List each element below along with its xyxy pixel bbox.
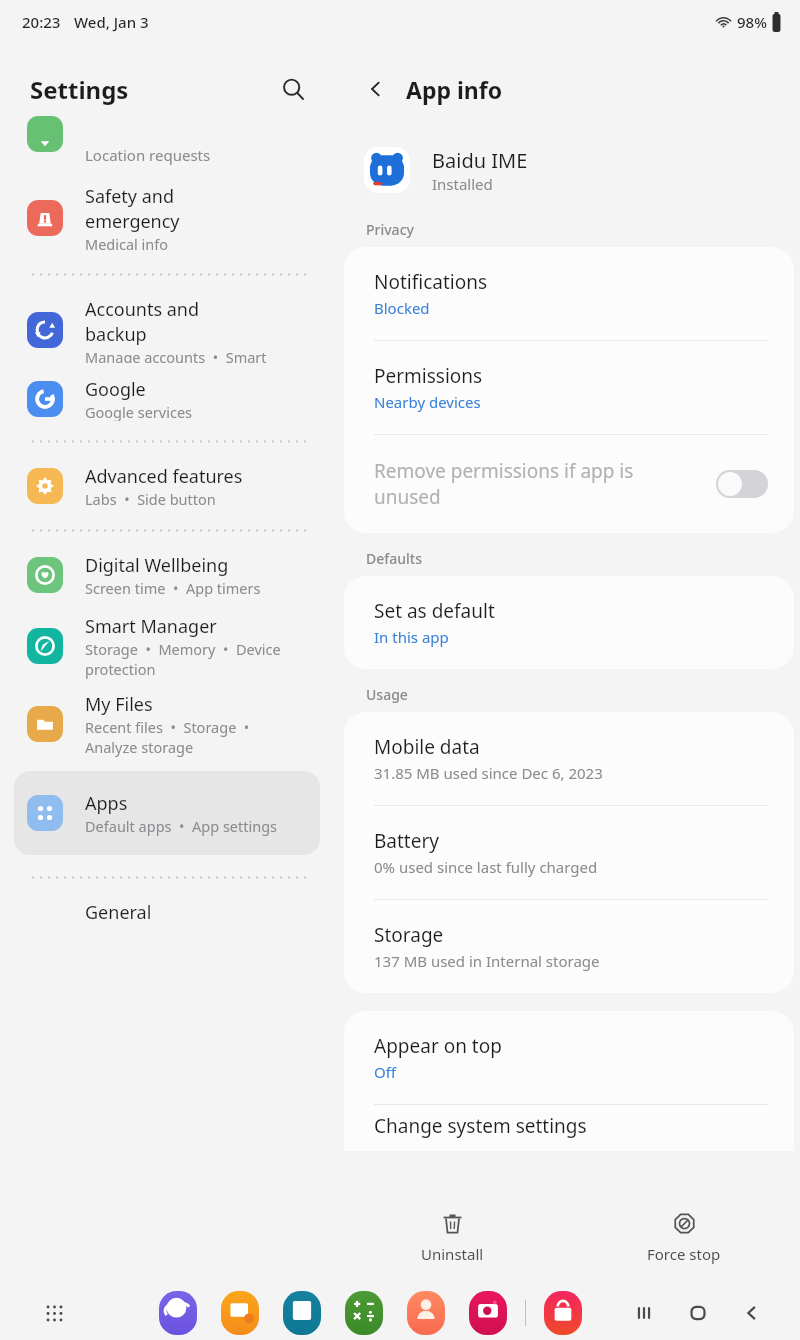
staticText: Settings xyxy=(30,73,129,106)
button[interactable]: Notifications xyxy=(344,247,794,340)
button[interactable]: Recents xyxy=(626,1295,662,1331)
button[interactable]: App xyxy=(283,1291,321,1335)
staticText: Blocked xyxy=(374,298,430,318)
staticText: unused xyxy=(374,484,441,510)
button[interactable]: Set as default xyxy=(344,576,794,669)
button[interactable]: Back xyxy=(354,67,398,111)
staticText: Permissions xyxy=(374,363,483,389)
button[interactable]: Change system settings xyxy=(344,1105,794,1151)
staticText: Storage • Memory • Device xyxy=(85,639,281,659)
staticText: Safety and xyxy=(85,184,174,209)
button[interactable]: Appear on top xyxy=(344,1011,794,1104)
button[interactable]: App xyxy=(544,1291,582,1335)
button[interactable]: Force stop xyxy=(568,1189,800,1285)
button[interactable]: Back xyxy=(734,1295,770,1331)
button[interactable]: All apps xyxy=(36,1295,72,1331)
staticText: Medical info xyxy=(85,234,169,252)
button[interactable]: App xyxy=(221,1291,259,1335)
staticText: emergency xyxy=(85,209,180,234)
staticText: 20:23 xyxy=(22,12,61,32)
button[interactable]: Safety and xyxy=(0,184,336,252)
staticText: Notifications xyxy=(374,269,488,295)
staticText: Advanced features xyxy=(85,464,243,489)
staticText: 98% xyxy=(737,12,767,32)
staticText: Set as default xyxy=(374,598,495,624)
staticText: Usage xyxy=(366,685,408,704)
staticText: App info xyxy=(406,74,503,105)
button[interactable]: Advanced features xyxy=(0,464,336,508)
button[interactable]: Apps xyxy=(14,771,320,855)
button[interactable]: My Files xyxy=(0,691,336,757)
staticText: Default apps • App settings xyxy=(85,816,278,836)
staticText: Privacy xyxy=(366,220,414,239)
staticText: 31.85 MB used since Dec 6, 2023 xyxy=(374,763,603,783)
staticText: Battery xyxy=(374,828,439,854)
staticText: Manage accounts • Smart xyxy=(85,347,267,363)
staticText: Location requests xyxy=(85,145,211,165)
button[interactable]: Uninstall xyxy=(336,1189,568,1285)
button[interactable]: Baidu IME xyxy=(336,134,800,206)
staticText: Google xyxy=(85,377,146,402)
button[interactable]: App xyxy=(407,1291,445,1335)
staticText: General xyxy=(85,900,152,925)
staticText: Smart Manager xyxy=(85,614,217,639)
button[interactable]: App xyxy=(345,1291,383,1335)
staticText: Uninstall xyxy=(421,1244,484,1264)
staticText: Google services xyxy=(85,402,193,421)
staticText: Analyze storage xyxy=(85,737,194,757)
staticText: Wed, Jan 3 xyxy=(74,12,149,32)
staticText: Off xyxy=(374,1062,397,1082)
staticText: Screen time • App timers xyxy=(85,578,261,597)
staticText: Installed xyxy=(432,174,493,194)
button[interactable]: Search xyxy=(271,67,315,111)
staticText: protection xyxy=(85,659,156,679)
staticText: Force stop xyxy=(647,1244,721,1264)
staticText: Mobile data xyxy=(374,734,480,760)
button[interactable]: Google xyxy=(0,377,336,421)
staticText: Labs • Side button xyxy=(85,489,216,508)
button[interactable]: Smart Manager xyxy=(0,613,336,679)
staticText: Defaults xyxy=(366,549,422,568)
staticText: Nearby devices xyxy=(374,392,481,412)
staticText: 137 MB used in Internal storage xyxy=(374,951,600,971)
staticText: Recent files • Storage • xyxy=(85,717,250,737)
staticText: Accounts and xyxy=(85,297,200,322)
button[interactable]: Permissions xyxy=(344,341,794,434)
button[interactable]: Battery xyxy=(344,806,794,899)
staticText: backup xyxy=(85,322,147,347)
button[interactable]: App xyxy=(159,1291,197,1335)
staticText: Apps xyxy=(85,791,128,816)
button[interactable]: Remove permissions toggle xyxy=(716,470,768,498)
staticText: My Files xyxy=(85,692,153,717)
staticText: Digital Wellbeing xyxy=(85,553,229,578)
button[interactable]: Storage xyxy=(344,900,794,993)
button[interactable]: App xyxy=(469,1291,507,1335)
button[interactable]: Digital Wellbeing xyxy=(0,553,336,597)
button[interactable]: Remove permissions if app is xyxy=(344,435,794,533)
button[interactable]: Accounts and xyxy=(0,297,336,363)
staticText: 0% used since last fully charged xyxy=(374,857,598,877)
button[interactable]: Mobile data xyxy=(344,712,794,805)
staticText: In this app xyxy=(374,627,449,647)
staticText: Baidu IME xyxy=(432,147,528,174)
staticText: Storage xyxy=(374,922,444,948)
button[interactable]: Home xyxy=(680,1295,716,1331)
staticText: Remove permissions if app is xyxy=(374,458,634,484)
staticText: Change system settings xyxy=(374,1113,587,1139)
staticText: Appear on top xyxy=(374,1033,502,1059)
